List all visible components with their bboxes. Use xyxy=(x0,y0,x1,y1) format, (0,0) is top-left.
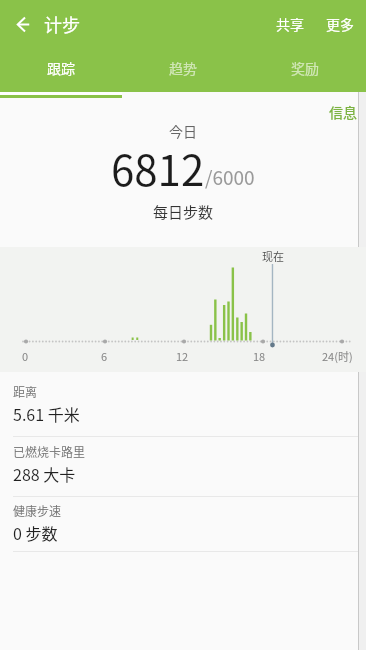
staticText: 奖励 xyxy=(291,58,319,78)
staticText: 跟踪 xyxy=(47,58,75,78)
staticText: 距离 xyxy=(13,383,38,400)
staticText: 5.61 千米 xyxy=(13,402,80,425)
staticText: 0 xyxy=(22,348,29,364)
button[interactable]: 趋势 xyxy=(122,48,244,88)
staticText: 更多 xyxy=(326,14,354,34)
staticText: 信息 xyxy=(329,102,357,122)
staticText: 每日步数 xyxy=(153,201,214,223)
button[interactable]: 距离 xyxy=(0,377,358,435)
staticText: 已燃烧卡路里 xyxy=(13,443,86,460)
staticText: 计步 xyxy=(44,11,80,37)
button[interactable]: 信息 xyxy=(311,98,357,126)
staticText: 0 步数 xyxy=(13,521,58,544)
staticText: 今日 xyxy=(169,121,197,141)
staticText: 共享 xyxy=(276,14,304,34)
staticText: 24(时) xyxy=(322,348,353,364)
button[interactable]: 奖励 xyxy=(244,48,366,88)
staticText: 6 xyxy=(101,348,108,364)
button[interactable]: 健康步速 xyxy=(0,496,358,554)
button[interactable]: 跟踪 xyxy=(0,48,122,88)
staticText: 288 大卡 xyxy=(13,462,76,485)
button[interactable]: 共享 xyxy=(268,6,312,42)
button[interactable]: 已燃烧卡路里 xyxy=(0,437,358,495)
staticText: 趋势 xyxy=(169,58,197,78)
staticText: 6812 xyxy=(111,137,205,198)
staticText: 健康步速 xyxy=(13,502,62,519)
button[interactable]: 更多 xyxy=(318,6,362,42)
staticText: /6000 xyxy=(205,163,255,191)
staticText: 现在 xyxy=(262,248,284,264)
staticText: 18 xyxy=(253,348,266,364)
button[interactable] xyxy=(4,6,40,42)
staticText: 12 xyxy=(176,348,189,364)
